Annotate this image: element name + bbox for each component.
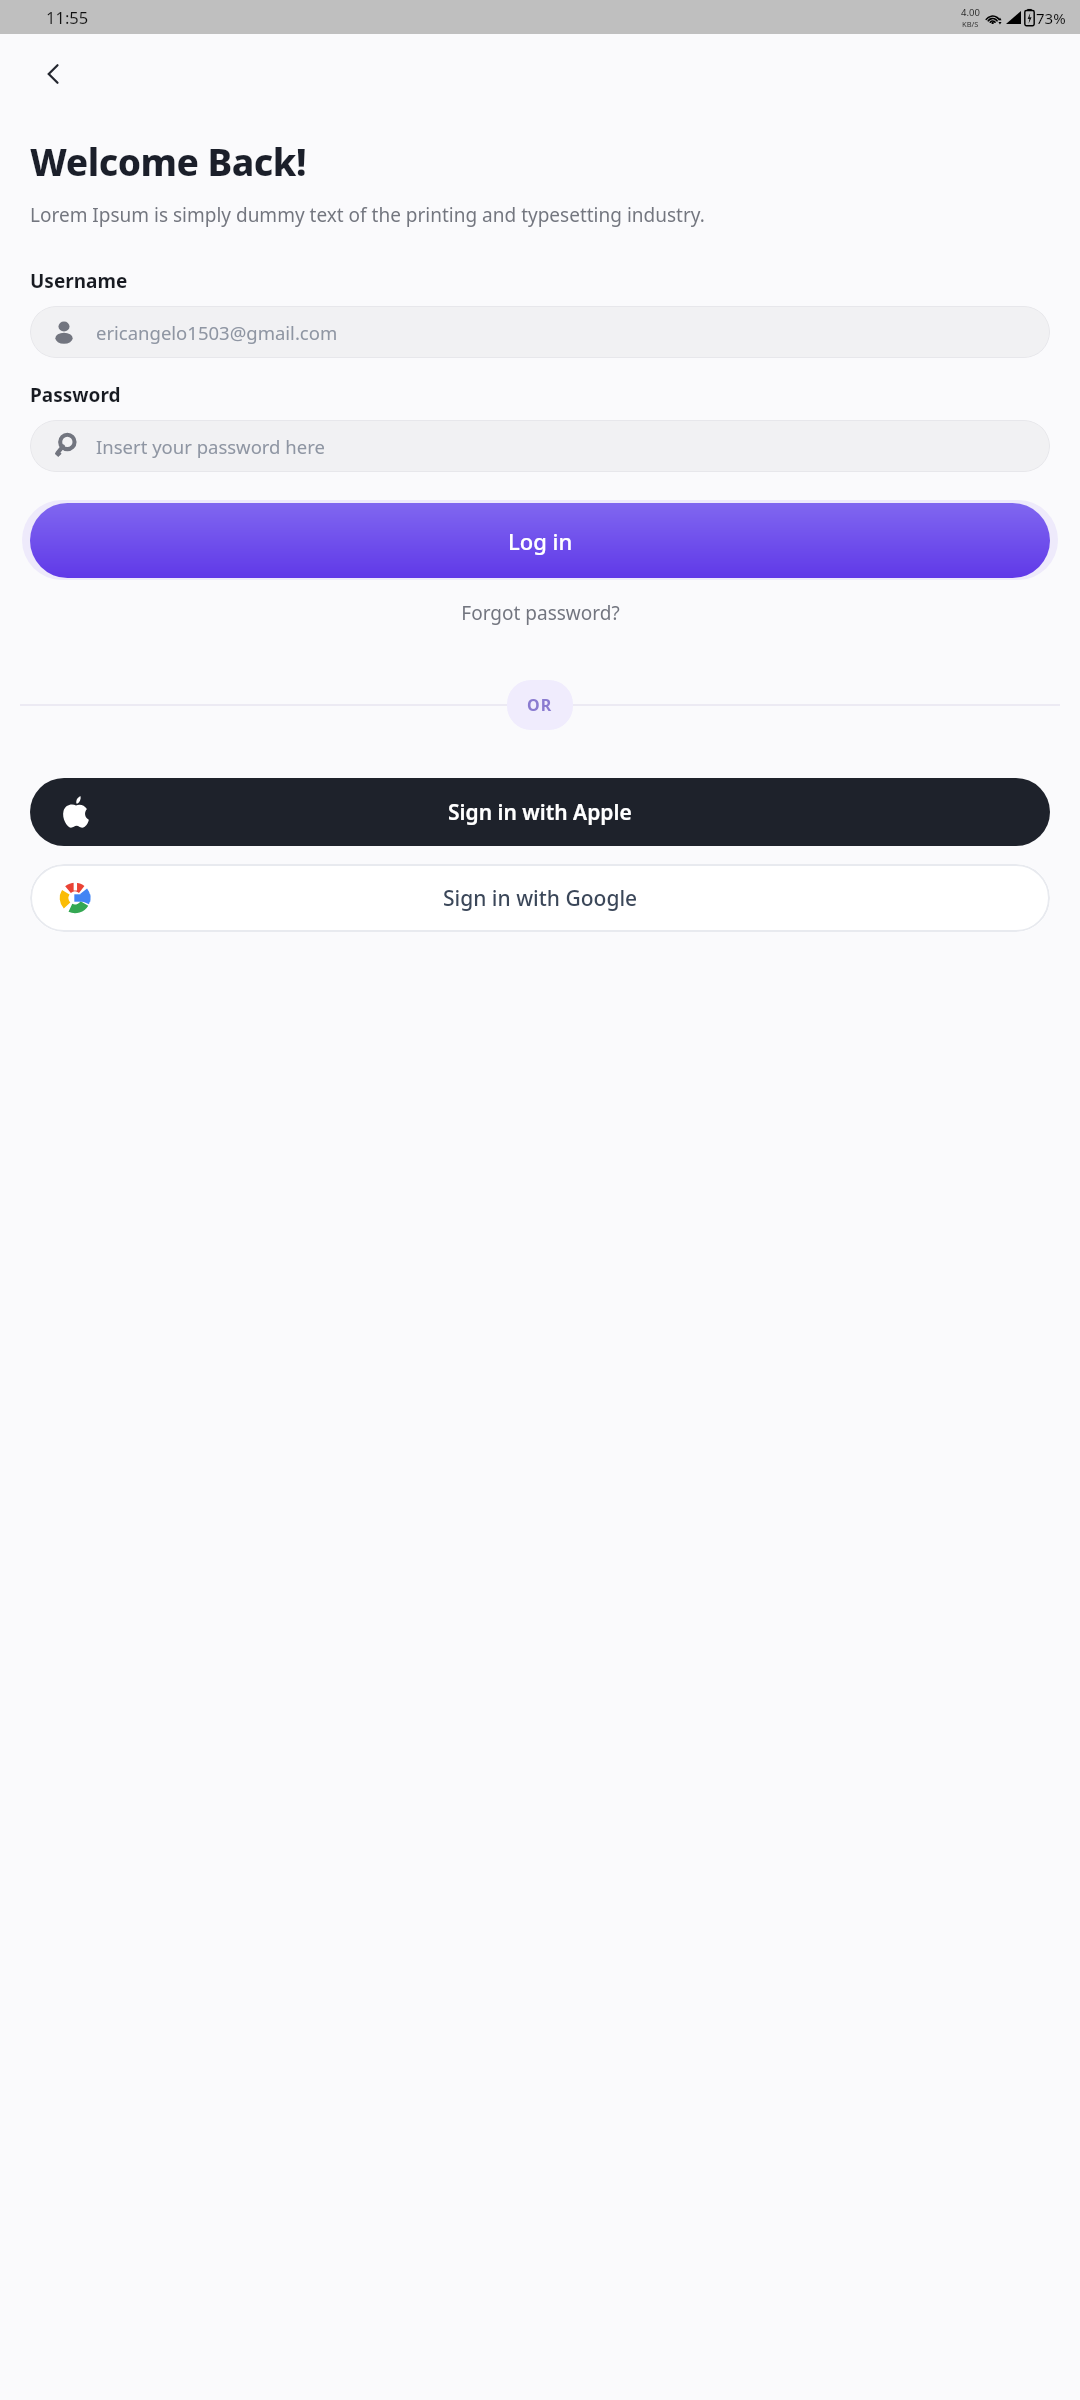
button[interactable]: Forgot password? — [443, 594, 638, 632]
staticText: 73% — [1036, 8, 1066, 28]
staticText: Password — [30, 382, 121, 408]
staticText: KB/S — [962, 19, 979, 29]
button[interactable]: ericangelo1503@gmail.com — [30, 306, 1050, 358]
staticText: 4.00 — [961, 6, 980, 19]
button[interactable]: Log in — [30, 503, 1050, 578]
staticText: Insert your password here — [96, 434, 325, 459]
staticText: Welcome Back! — [30, 136, 307, 186]
button[interactable]: Sign in with Apple — [30, 778, 1050, 846]
button[interactable]: Back — [30, 50, 78, 98]
staticText: Sign in with Google — [443, 884, 638, 913]
staticText: Lorem Ipsum is simply dummy text of the … — [30, 202, 705, 228]
staticText: Forgot password? — [461, 600, 620, 626]
staticText: OR — [527, 694, 553, 716]
staticText: Username — [30, 268, 128, 294]
button[interactable]: Insert your password here — [30, 420, 1050, 472]
staticText: Sign in with Apple — [448, 798, 632, 827]
staticText: Log in — [508, 526, 573, 556]
staticText: 11:55 — [46, 6, 89, 28]
button[interactable]: Sign in with Google — [30, 864, 1050, 932]
staticText: ericangelo1503@gmail.com — [96, 320, 338, 345]
